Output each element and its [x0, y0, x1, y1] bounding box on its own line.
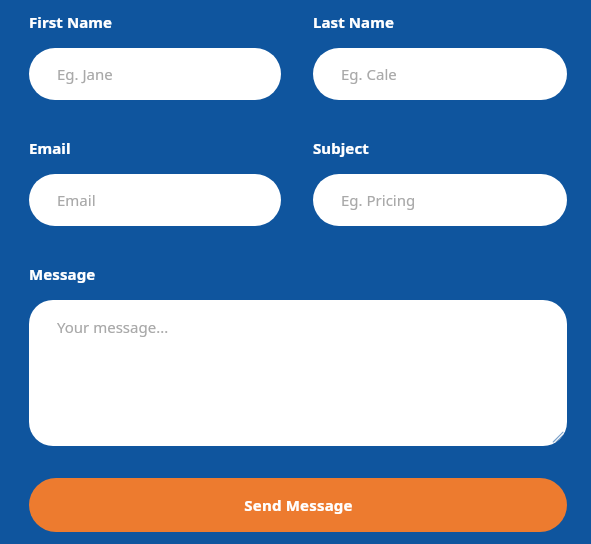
button[interactable]: Eg. Cale	[313, 48, 567, 100]
staticText: Eg. Cale	[341, 64, 397, 84]
staticText: Eg. Jane	[57, 64, 113, 84]
staticText: Email	[57, 190, 96, 210]
button[interactable]: Your message...	[29, 300, 567, 446]
button[interactable]: Eg. Jane	[29, 48, 281, 100]
button[interactable]: Email	[29, 174, 281, 226]
staticText: Send Message	[244, 495, 353, 515]
staticText: Subject	[313, 138, 369, 158]
staticText: Last Name	[313, 12, 394, 32]
button[interactable]: Send Message	[29, 478, 567, 532]
staticText: First Name	[29, 12, 113, 32]
button[interactable]: Eg. Pricing	[313, 174, 567, 226]
staticText: Email	[29, 138, 71, 158]
staticText: Your message...	[57, 317, 169, 337]
staticText: Message	[29, 264, 96, 284]
staticText: Eg. Pricing	[341, 190, 416, 210]
